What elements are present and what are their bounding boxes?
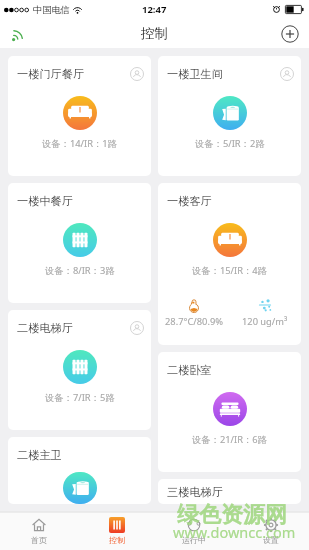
button[interactable]: 控制 xyxy=(78,512,155,550)
button[interactable]: 一楼门厅餐厅 xyxy=(8,56,151,176)
button[interactable]: 一楼卫生间 xyxy=(158,56,301,176)
staticText: 首页 xyxy=(31,535,47,545)
staticText: 一楼门厅餐厅 xyxy=(17,67,85,81)
staticText: 控制 xyxy=(141,25,168,42)
button[interactable]: Network status xyxy=(10,24,30,44)
staticText: 三楼电梯厅 xyxy=(167,485,223,499)
button[interactable]: 首页 xyxy=(0,512,78,550)
button[interactable]: 一楼中餐厅 xyxy=(8,183,151,303)
staticText: 设备：5/IR：2路 xyxy=(195,137,265,150)
staticText: 设备：14/IR：1路 xyxy=(42,137,117,150)
staticText: 120 ug/m³ xyxy=(242,315,288,328)
staticText: 28.7°C/80.9% xyxy=(165,315,223,328)
button[interactable]: 一楼客厅 xyxy=(158,183,301,345)
button[interactable]: 二楼主卫 xyxy=(8,437,151,504)
staticText: 一楼卫生间 xyxy=(167,67,223,81)
staticText: 中国电信 xyxy=(33,4,70,16)
staticText: 设备：21/IR：6路 xyxy=(192,433,267,446)
button[interactable]: 设置 xyxy=(232,512,309,550)
staticText: 二楼卧室 xyxy=(167,363,212,377)
staticText: 设备：7/IR：5路 xyxy=(45,391,115,404)
staticText: 设置 xyxy=(263,535,279,545)
staticText: 一楼中餐厅 xyxy=(17,194,73,208)
button[interactable]: 二楼卧室 xyxy=(158,352,301,472)
staticText: 绿色资源网 xyxy=(177,501,287,529)
staticText: 二楼电梯厅 xyxy=(17,321,73,335)
button[interactable]: 运行中 xyxy=(155,512,232,550)
staticText: 运行中 xyxy=(182,535,206,545)
button[interactable]: 三楼电梯厅 xyxy=(158,479,301,504)
button[interactable]: Add xyxy=(281,25,299,43)
staticText: 设备：15/IR：4路 xyxy=(192,264,267,277)
staticText: www.downcc.com xyxy=(173,522,296,542)
staticText: 二楼主卫 xyxy=(17,448,62,462)
button[interactable]: 二楼电梯厅 xyxy=(8,310,151,430)
staticText: 设备：8/IR：3路 xyxy=(45,264,115,277)
staticText: 控制 xyxy=(109,535,125,545)
staticText: 一楼客厅 xyxy=(167,194,212,208)
staticText: 12:47 xyxy=(142,3,167,16)
